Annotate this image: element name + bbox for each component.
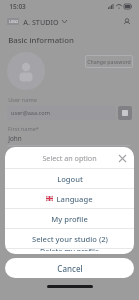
staticText: User name [8,96,37,104]
staticText: Select your studio (2) [32,234,108,244]
staticText: A. STUDIO [23,17,59,27]
staticText: LOGO [9,20,18,24]
staticText: Logout [57,174,83,184]
staticText: Cancel [57,263,83,274]
button[interactable]: Logout [5,169,134,188]
staticText: Language [56,194,93,204]
staticText: 15:03 [9,2,26,11]
staticText: First name* [8,125,39,133]
staticText: user@aaa.com [11,109,50,117]
button[interactable]: LOGO [7,13,132,30]
staticText: My profile [51,214,88,224]
button[interactable]: Cancel [5,258,134,278]
staticText: Select an option [42,153,97,163]
staticText: John [8,134,22,143]
button[interactable]: Close [115,151,129,165]
staticText: Change password [87,58,131,65]
button[interactable]: Copy [118,106,132,120]
button[interactable]: Delete my profile [5,249,134,254]
button[interactable]: Language [5,189,134,208]
button[interactable]: Change password [85,55,133,68]
button[interactable]: Account [121,16,132,27]
button[interactable]: My profile [5,209,134,228]
button[interactable]: Select your studio (2) [5,229,134,248]
staticText: Delete my profile [40,246,99,251]
staticText: Basic information [8,35,74,46]
